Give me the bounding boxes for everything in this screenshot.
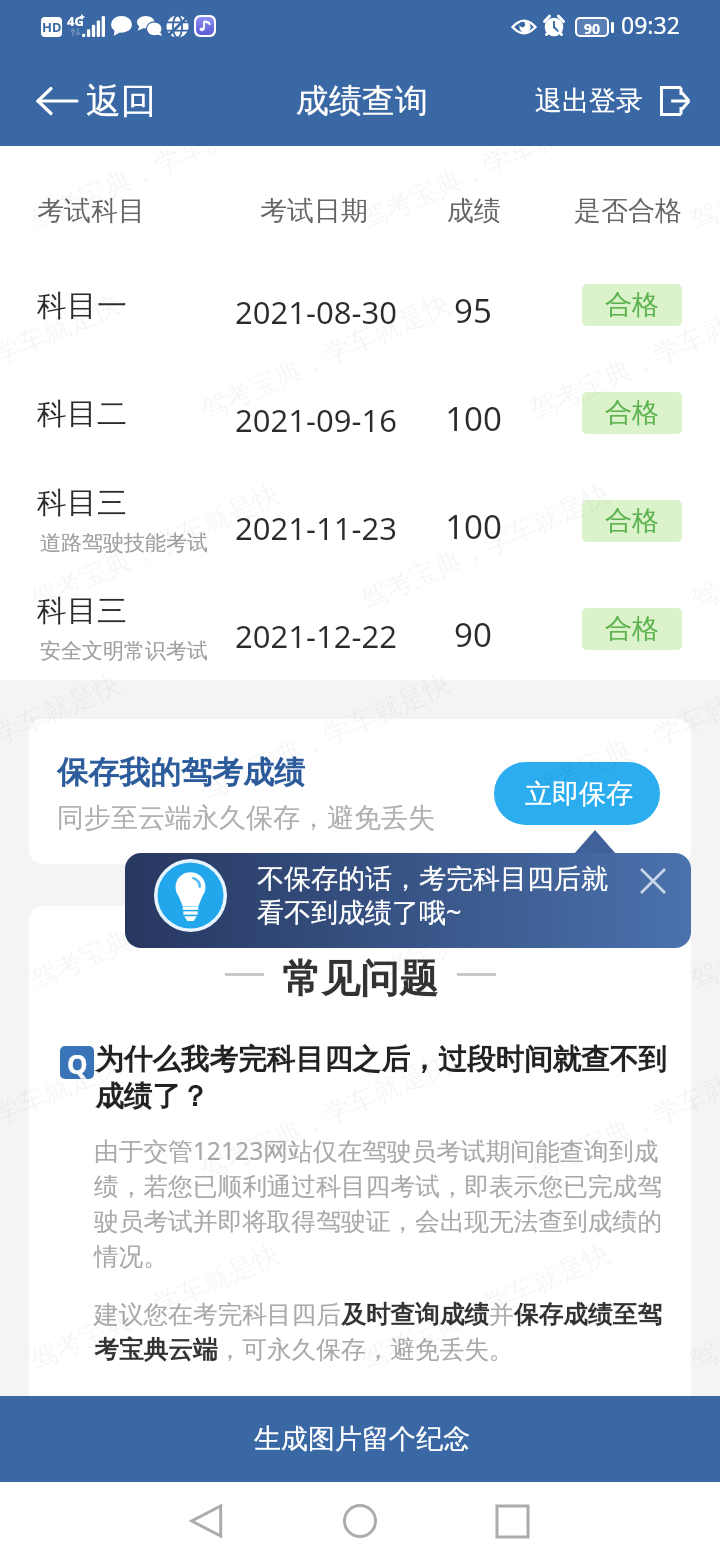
staticText: 科目三 <box>37 484 127 522</box>
staticText: 立即保存 <box>525 777 633 811</box>
staticText: 合格 <box>605 396 659 430</box>
staticText: 4G <box>67 12 84 30</box>
button[interactable]: 立即保存 <box>494 762 660 825</box>
button[interactable] <box>0 360 720 468</box>
staticText: Q <box>67 1046 88 1079</box>
staticText: 100 <box>445 504 502 549</box>
staticText: 驾考宝典，学车就是快 <box>355 857 615 997</box>
staticText: 常见问题 <box>282 954 438 1003</box>
staticText: 驾考宝典，学车就是快 <box>355 97 615 237</box>
staticText: 驾考宝典，学车就是快 <box>195 1047 455 1187</box>
button[interactable]: Home <box>310 1482 410 1560</box>
staticText: 驾考宝典，学车就是快 <box>525 1047 720 1187</box>
staticText: 驾考宝典，学车就是快 <box>355 477 615 617</box>
button[interactable] <box>0 468 720 576</box>
staticText: 合格 <box>605 288 659 322</box>
staticText: 考试日期 <box>260 194 368 228</box>
staticText: 考试科目 <box>37 194 145 228</box>
staticText: 成绩查询 <box>296 80 428 122</box>
staticText: 驾考宝典，学车就是快 <box>525 667 720 807</box>
staticText: 90 <box>584 19 601 35</box>
staticText: 驾考宝典，学车就是快 <box>25 477 285 617</box>
staticText: 09:32 <box>621 9 680 40</box>
staticText: HD <box>42 18 62 36</box>
button[interactable]: 退出登录 <box>515 74 720 128</box>
staticText: 驾考宝典，学车就是快 <box>0 1047 125 1187</box>
staticText: 为什么我考完科目四之后，过段时间就查不到成绩了？ <box>95 1041 680 1115</box>
staticText: 保存我的驾考成绩 <box>57 753 305 792</box>
staticText: 由于交管12123网站仅在驾驶员考试期间能查询到成绩，若您已顺利通过科目四考试，… <box>94 1134 672 1272</box>
staticText: 科目一 <box>37 287 127 325</box>
button[interactable]: 合格 <box>582 608 682 650</box>
staticText: 驾考宝典，学车就是快 <box>525 287 720 427</box>
staticText: 不保存的话，考完科目四后就 看不到成绩了哦~ <box>257 862 608 930</box>
staticText: 成绩 <box>447 194 501 228</box>
staticText: 合格 <box>605 612 659 646</box>
staticText: 返回 <box>86 79 156 123</box>
staticText: 驾考宝典，学车就是快 <box>525 1427 720 1560</box>
staticText: 2021-08-30 <box>235 291 397 333</box>
staticText: 驾考宝典，学车就是快 <box>685 1237 720 1377</box>
staticText: 驾考宝典，学车就是快 <box>355 1237 615 1377</box>
staticText: 驾考宝典，学车就是快 <box>25 1237 285 1377</box>
staticText: 90 <box>454 612 492 657</box>
staticText: 驾考宝典，学车就是快 <box>685 857 720 997</box>
staticText: 驾考宝典，学车就是快 <box>195 1427 455 1560</box>
staticText: 驾考宝典，学车就是快 <box>0 287 125 427</box>
staticText: 驾考宝典，学车就是快 <box>25 97 285 237</box>
staticText: 2021-12-22 <box>235 615 397 657</box>
staticText: 是否合格 <box>574 194 682 228</box>
staticText: 驾考宝典，学车就是快 <box>685 97 720 237</box>
staticText: 安全文明常识考试 <box>40 638 208 664</box>
staticText: 道路驾驶技能考试 <box>40 530 208 556</box>
button[interactable]: 合格 <box>582 284 682 326</box>
button[interactable]: 生成图片留个纪念 <box>0 1396 720 1482</box>
staticText: 科目三 <box>37 592 127 630</box>
button[interactable]: Close <box>628 856 678 906</box>
staticText: 2021-09-16 <box>235 399 397 441</box>
staticText: 驾考宝典，学车就是快 <box>195 287 455 427</box>
button[interactable]: Recents <box>462 1482 562 1560</box>
staticText: 退出登录 <box>535 84 643 118</box>
button[interactable] <box>0 252 720 360</box>
button[interactable]: 返回 <box>0 69 176 133</box>
button[interactable]: 合格 <box>582 392 682 434</box>
button[interactable]: 合格 <box>582 500 682 542</box>
staticText: 驾考宝典，学车就是快 <box>0 667 125 807</box>
staticText: 驾考宝典，学车就是快 <box>25 857 285 997</box>
staticText: 95 <box>454 288 492 333</box>
staticText: 驾考宝典，学车就是快 <box>195 667 455 807</box>
staticText: 生成图片留个纪念 <box>254 1422 470 1456</box>
button[interactable]: Back <box>157 1482 257 1560</box>
staticText: 驾考宝典，学车就是快 <box>0 1427 125 1560</box>
staticText: 科目二 <box>37 395 127 433</box>
button[interactable] <box>0 576 720 684</box>
staticText: 同步至云端永久保存，避免丢失 <box>57 801 435 835</box>
staticText: 合格 <box>605 504 659 538</box>
staticText: 2021-11-23 <box>235 507 397 549</box>
staticText: 100 <box>445 396 502 441</box>
staticText: 建议您在考完科目四后及时查询成绩并保存成绩至驾考宝典云端，可永久保存，避免丢失。 <box>94 1299 672 1365</box>
